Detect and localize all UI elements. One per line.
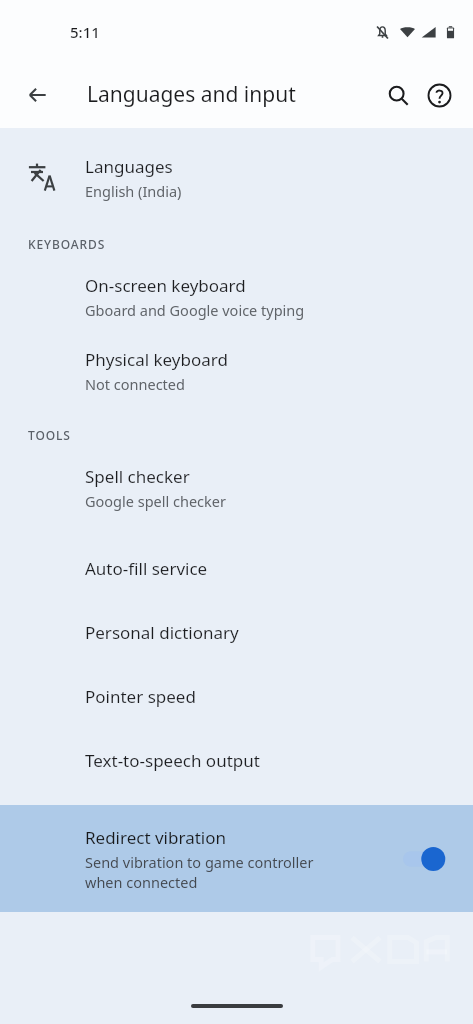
staticText: Physical keyboard <box>85 348 228 371</box>
staticText: Languages <box>85 155 173 178</box>
button[interactable]: Help <box>415 71 463 119</box>
staticText: TOOLS <box>28 427 71 443</box>
staticText: On-screen keyboard <box>85 274 246 297</box>
button[interactable]: Pointer speed <box>0 664 473 728</box>
staticText: KEYBOARDS <box>28 236 106 252</box>
button[interactable]: Redirect vibration toggle <box>401 839 451 879</box>
staticText: Auto-fill service <box>85 557 208 580</box>
staticText: Redirect vibration <box>85 826 226 849</box>
button[interactable]: Search <box>374 71 422 119</box>
staticText: Personal dictionary <box>85 621 239 644</box>
staticText: Google spell checker <box>85 491 226 511</box>
button[interactable]: Spell checker <box>0 463 473 513</box>
staticText: Gboard and Google voice typing <box>85 300 305 320</box>
button[interactable]: Physical keyboard <box>0 346 473 396</box>
button[interactable]: Auto-fill service <box>0 536 473 600</box>
button[interactable]: Personal dictionary <box>0 600 473 664</box>
staticText: English (India) <box>85 181 182 201</box>
staticText: Text-to-speech output <box>85 749 260 772</box>
staticText: Not connected <box>85 374 185 394</box>
button[interactable]: Text-to-speech output <box>0 728 473 792</box>
button[interactable]: On-screen keyboard <box>0 272 473 322</box>
staticText: 5:11 <box>70 22 100 42</box>
button[interactable]: Back <box>14 71 62 119</box>
staticText: Send vibration to game controller when c… <box>85 852 314 892</box>
staticText: Spell checker <box>85 465 190 488</box>
button[interactable]: Redirect vibration <box>0 805 473 912</box>
staticText: Languages and input <box>87 80 296 109</box>
button[interactable]: Languages <box>0 142 473 214</box>
staticText: Pointer speed <box>85 685 196 708</box>
